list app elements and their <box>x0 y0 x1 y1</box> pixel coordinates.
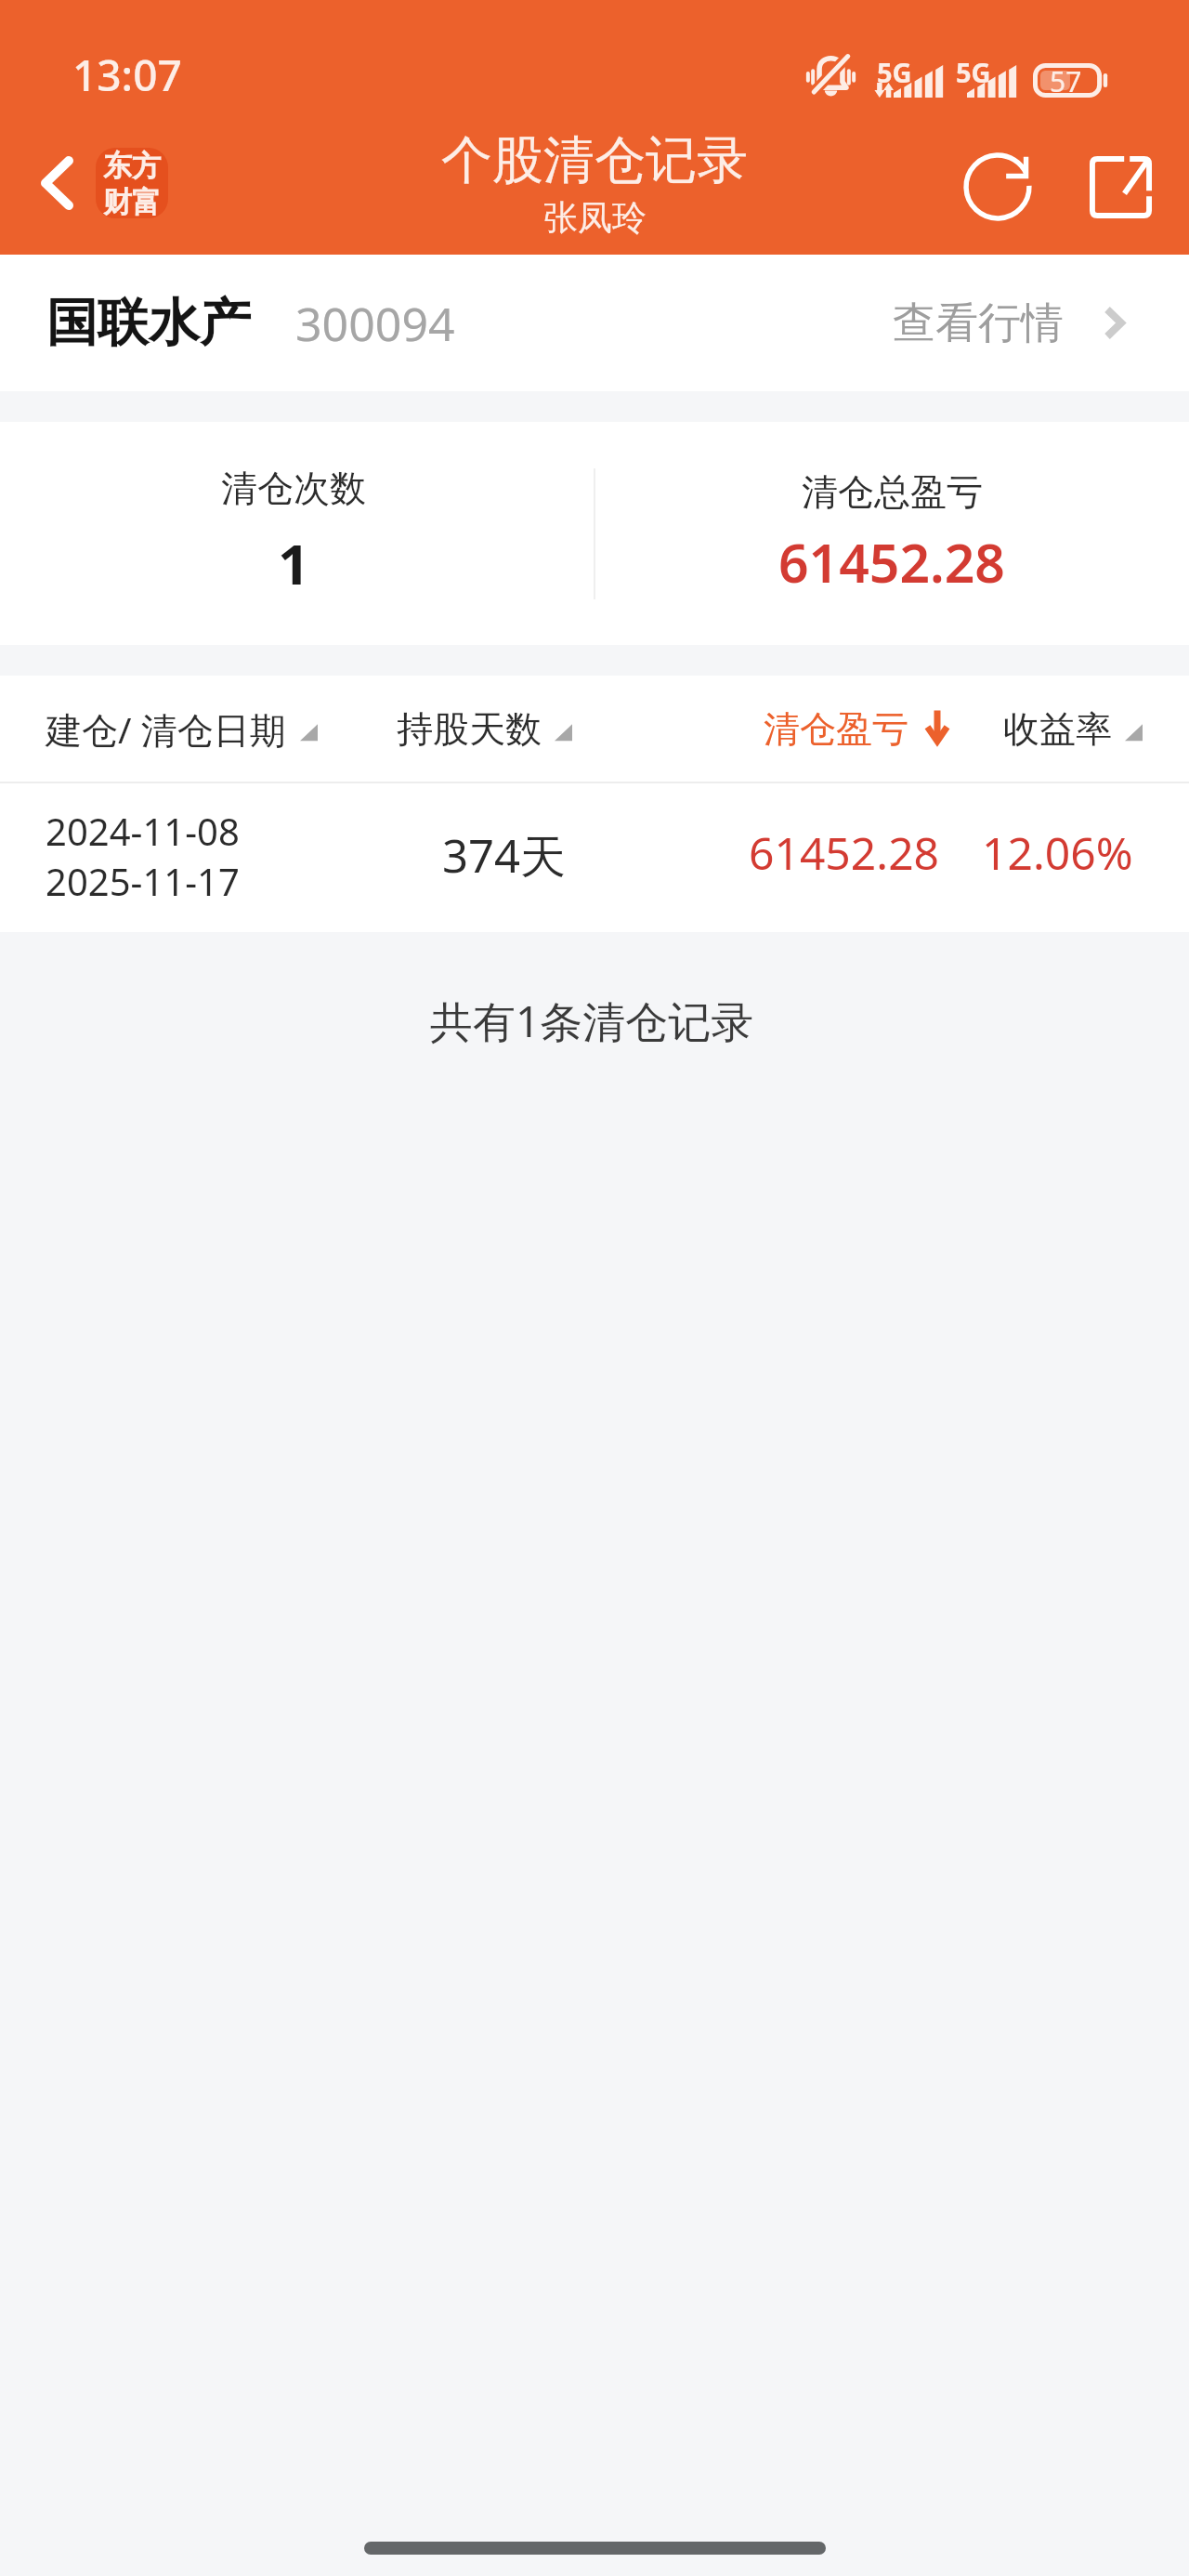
staticText: 清仓盈亏 <box>764 706 908 752</box>
staticText: 2024-11-08 <box>46 806 240 856</box>
staticText: 张凤玲 <box>543 196 647 240</box>
staticText: 61452.28 <box>778 526 1005 598</box>
staticText: 5G <box>956 54 991 90</box>
staticText: 清仓总盈亏 <box>802 469 983 515</box>
button[interactable]: 国联水产 <box>0 255 1189 391</box>
staticText: 建仓/ 清仓日期 <box>46 704 286 754</box>
button[interactable]: 2024-11-08 <box>0 783 1189 932</box>
staticText: 57 <box>1050 62 1082 97</box>
staticText: 5G <box>877 54 912 90</box>
staticText: 财富 <box>103 184 161 218</box>
button[interactable]: Share <box>1074 140 1167 233</box>
staticText: 清仓次数 <box>221 466 366 511</box>
staticText: 12.06% <box>982 822 1133 883</box>
staticText: 个股清仓记录 <box>441 128 748 192</box>
staticText: 东方 <box>103 148 161 184</box>
staticText: 300094 <box>295 292 455 355</box>
staticText: 2025-11-17 <box>46 856 240 906</box>
staticText: 持股天数 <box>397 706 542 752</box>
staticText: 收益率 <box>1003 706 1112 752</box>
staticText: 国联水产 <box>46 291 251 355</box>
staticText: 374天 <box>442 824 567 887</box>
button[interactable]: Back <box>19 132 95 234</box>
staticText: 共有1条清仓记录 <box>430 992 754 1050</box>
button[interactable]: Refresh <box>951 140 1044 233</box>
button[interactable]: East Money home <box>96 148 168 218</box>
staticText: 1 <box>278 525 310 601</box>
staticText: 查看行情 <box>893 296 1064 350</box>
staticText: 61452.28 <box>749 822 940 883</box>
staticText: 13:07 <box>72 46 182 104</box>
